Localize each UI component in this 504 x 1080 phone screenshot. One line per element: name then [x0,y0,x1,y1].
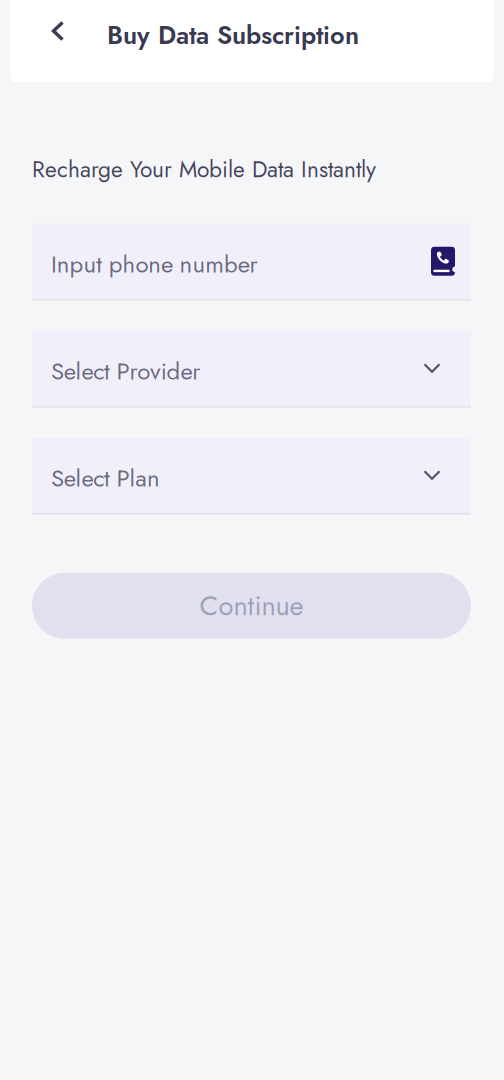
button[interactable]: Input phone number [32,224,471,301]
staticText: Buy Data Subscription [107,17,359,54]
staticText: Input phone number [51,247,258,282]
staticText: Recharge Your Mobile Data Instantly [32,153,376,186]
staticText: Select Provider [51,354,200,389]
button[interactable]: Back [38,11,78,51]
button[interactable]: Select Plan [32,438,471,515]
staticText: Select Plan [51,461,160,496]
button[interactable]: Select Provider [32,331,471,408]
button[interactable]: Continue [32,573,471,639]
staticText: Continue [199,586,303,625]
